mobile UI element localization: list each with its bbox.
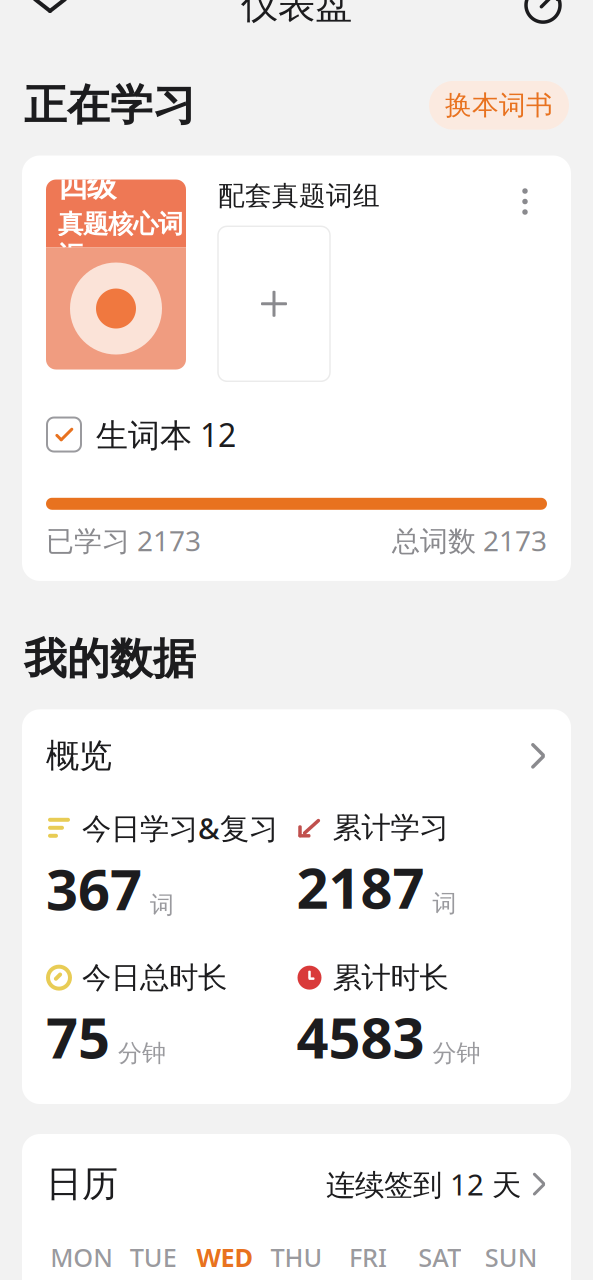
staticText: 已学习 2173: [46, 522, 201, 559]
button[interactable]: 分享: [513, 0, 573, 35]
staticText: 生词本 12: [96, 413, 236, 456]
staticText: MON: [50, 1240, 113, 1274]
staticText: 累计时长: [332, 960, 448, 996]
staticText: 累计学习: [332, 810, 448, 846]
staticText: 分钟: [118, 1038, 166, 1068]
staticText: 换本词书: [445, 89, 553, 122]
button[interactable]: 生词本 12: [46, 381, 547, 464]
staticText: WED: [196, 1240, 253, 1274]
staticText: 概览: [46, 735, 112, 776]
staticText: 今日学习&复习: [82, 808, 278, 847]
button[interactable]: 收起: [20, 0, 80, 35]
staticText: SAT: [418, 1240, 461, 1274]
staticText: THU: [270, 1240, 322, 1274]
staticText: 分钟: [432, 1038, 480, 1068]
staticText: 词: [432, 889, 456, 918]
staticText: 词: [150, 890, 174, 920]
staticText: TUE: [130, 1240, 177, 1274]
button[interactable]: 概览: [46, 709, 547, 782]
staticText: 75: [46, 1000, 110, 1074]
staticText: 配套真题词组: [218, 179, 380, 212]
button[interactable]: 添加词组: [218, 226, 330, 381]
button[interactable]: 连续签到 12 天: [326, 1165, 547, 1204]
staticText: 4583: [296, 1000, 424, 1074]
staticText: 总词数 2173: [392, 522, 547, 559]
staticText: 真题核心词汇: [58, 208, 183, 271]
staticText: 367: [46, 851, 142, 926]
staticText: 今日总时长: [82, 960, 227, 996]
button[interactable]: 更多选项: [503, 179, 547, 223]
staticText: 日历: [46, 1162, 118, 1206]
button[interactable]: 换本词书: [429, 81, 569, 130]
staticText: 连续签到 12 天: [326, 1165, 521, 1204]
staticText: SUN: [485, 1240, 538, 1274]
staticText: 正在学习: [24, 79, 196, 131]
staticText: 我的数据: [24, 633, 196, 685]
staticText: 四级: [58, 168, 116, 204]
staticText: FRI: [349, 1240, 387, 1274]
staticText: 仪表盘: [241, 0, 352, 28]
staticText: 2187: [296, 850, 424, 924]
button[interactable]: 四级: [46, 179, 186, 369]
